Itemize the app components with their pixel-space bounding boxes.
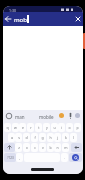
staticText: r [30, 125, 32, 130]
button[interactable] [75, 113, 80, 118]
button[interactable]: k [62, 133, 69, 142]
button[interactable]: n [54, 143, 61, 152]
button[interactable]: , [16, 153, 23, 162]
button[interactable]: x [23, 143, 30, 152]
button[interactable]: mobile [39, 114, 54, 120]
staticText: q [6, 125, 9, 130]
button[interactable]: u [51, 123, 58, 132]
staticText: t [38, 125, 40, 130]
staticText: x [26, 145, 28, 150]
button[interactable]: i [58, 123, 65, 132]
button[interactable]: a [8, 133, 15, 142]
staticText: h [49, 135, 52, 140]
button[interactable]: c [31, 143, 38, 152]
staticText: o [68, 125, 71, 130]
button[interactable]: o [66, 123, 73, 132]
staticText: . [64, 155, 65, 160]
staticText: v [42, 145, 44, 150]
button[interactable]: t [35, 123, 42, 132]
staticText: u [53, 125, 56, 130]
button[interactable]: f [31, 133, 38, 142]
button[interactable]: s [15, 133, 22, 142]
staticText: n [56, 145, 59, 150]
staticText: z [18, 145, 20, 150]
button[interactable]: p [74, 123, 81, 132]
button[interactable]: . [61, 153, 68, 162]
button[interactable]: b [47, 143, 54, 152]
button[interactable]: z [15, 143, 22, 152]
button[interactable] [4, 111, 14, 121]
staticText: e [22, 125, 24, 130]
button[interactable]: y [43, 123, 50, 132]
staticText: s [18, 135, 20, 140]
button[interactable]: w [12, 123, 19, 132]
button[interactable]: q [4, 123, 11, 132]
staticText: ?123 [7, 156, 14, 160]
staticText: w [14, 125, 17, 130]
staticText: p [76, 125, 79, 130]
button[interactable] [59, 113, 64, 118]
staticText: , [19, 155, 20, 160]
button[interactable]: g [39, 133, 46, 142]
staticText: l [73, 135, 74, 140]
staticText: a [11, 135, 13, 140]
staticText: c [34, 145, 36, 150]
staticText: m [64, 145, 68, 150]
button[interactable]: h [47, 133, 54, 142]
button[interactable] [3, 14, 13, 24]
staticText: f [34, 135, 36, 140]
button[interactable] [4, 143, 15, 152]
button[interactable]: m [62, 143, 69, 152]
button[interactable]: ?123 [4, 153, 16, 162]
button[interactable] [71, 143, 82, 152]
button[interactable]: l [70, 133, 77, 142]
staticText: y [46, 125, 48, 130]
button[interactable]: r [27, 123, 34, 132]
button[interactable]: man [15, 114, 25, 120]
staticText: g [41, 135, 44, 140]
staticText: k [65, 135, 67, 140]
button[interactable]: v [39, 143, 46, 152]
button[interactable] [73, 14, 83, 24]
staticText: b [49, 145, 52, 150]
staticText: mob [14, 16, 27, 24]
button[interactable]: e [19, 123, 26, 132]
staticText: d [25, 135, 28, 140]
staticText: j [57, 135, 58, 140]
button[interactable] [69, 153, 82, 162]
button[interactable]: d [23, 133, 30, 142]
staticText: i [61, 125, 62, 130]
staticText: 1:30 [9, 8, 16, 13]
button[interactable]: j [54, 133, 61, 142]
